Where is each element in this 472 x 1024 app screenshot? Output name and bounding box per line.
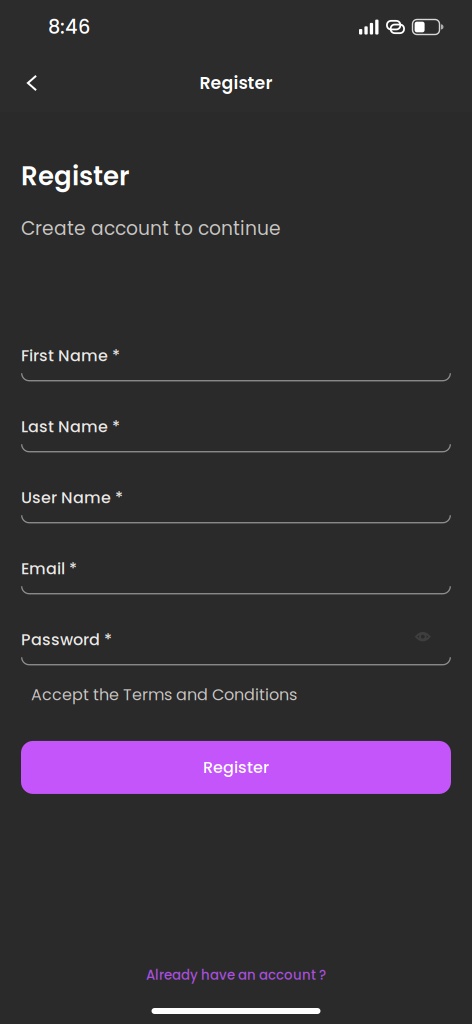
button[interactable]: Register	[21, 741, 451, 794]
staticText: Already have an account ?	[146, 966, 326, 984]
staticText: Register	[203, 756, 269, 779]
button[interactable]: Accept the Terms and Conditions	[21, 683, 297, 706]
button[interactable]: Back	[10, 61, 54, 105]
staticText: 8:46	[48, 13, 90, 41]
button[interactable]: Show password	[415, 626, 451, 653]
staticText: Register	[199, 71, 272, 95]
staticText: Accept the Terms and Conditions	[31, 683, 297, 706]
staticText: Register	[21, 158, 130, 194]
staticText: Email *	[21, 557, 77, 580]
staticText: First Name *	[21, 344, 120, 367]
staticText: Last Name *	[21, 415, 120, 438]
staticText: Password *	[21, 628, 112, 651]
button[interactable]: Already have an account ?	[21, 964, 451, 986]
staticText: User Name *	[21, 486, 123, 509]
staticText: Create account to continue	[21, 215, 281, 241]
